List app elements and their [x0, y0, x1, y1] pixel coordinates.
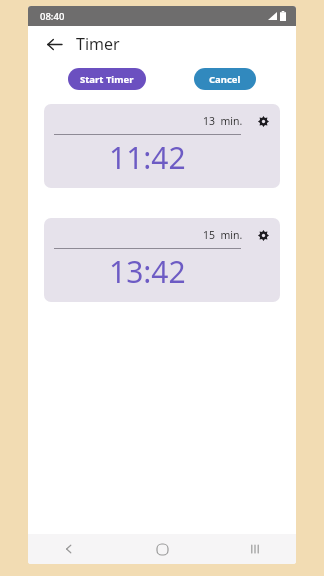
button[interactable]: Cancel [194, 68, 256, 90]
staticText: 11:42 [109, 137, 186, 178]
button[interactable]: Settings [255, 227, 271, 243]
button[interactable]: Home [147, 534, 177, 564]
staticText: 15 min. [203, 228, 243, 242]
staticText: 13:42 [109, 251, 186, 292]
button[interactable]: 15 min. [44, 218, 280, 302]
button[interactable]: Start Timer [68, 68, 146, 90]
staticText: 13 min. [203, 114, 243, 128]
staticText: Cancel [209, 73, 241, 86]
button[interactable]: Recent apps [240, 534, 270, 564]
button[interactable]: 13 min. [44, 104, 280, 188]
staticText: 08:40 [40, 10, 65, 23]
button[interactable]: Back [42, 32, 66, 56]
staticText: Timer [76, 33, 120, 55]
staticText: Start Timer [80, 73, 134, 86]
button[interactable]: Settings [255, 113, 271, 129]
button[interactable]: Back [54, 534, 84, 564]
